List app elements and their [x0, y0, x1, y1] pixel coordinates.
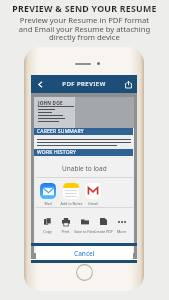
staticText: PDF PREVIEW: [46, 80, 122, 88]
staticText: More: [117, 229, 126, 234]
staticText: Preview your Resume in PDF format and Em…: [0, 15, 169, 42]
button[interactable]: Save to Files: [71, 216, 97, 236]
button[interactable]: More: [108, 216, 133, 236]
button[interactable]: Mail: [36, 183, 61, 205]
button[interactable]: Back: [34, 78, 46, 90]
button[interactable]: Share: [122, 78, 134, 90]
button[interactable]: Copy: [36, 216, 60, 236]
staticText: Print: [61, 229, 70, 234]
staticText: PREVIEW & SEND YOUR RESUME: [0, 3, 169, 15]
button[interactable]: Gmail: [80, 183, 106, 205]
staticText: Copy: [43, 229, 52, 234]
staticText: Create PDF: [94, 229, 113, 234]
staticText: JOHN DOE: [38, 100, 63, 106]
staticText: Cancel: [74, 249, 95, 258]
button[interactable]: Cancel: [36, 246, 133, 260]
button[interactable]: Add to Notes: [58, 183, 84, 205]
staticText: CAREER SUMMARY: [37, 128, 84, 135]
staticText: Save to Files: [74, 229, 95, 234]
button[interactable]: Create PDF: [90, 216, 116, 236]
staticText: Mail: [44, 201, 52, 206]
button[interactable]: Print: [52, 216, 78, 236]
staticText: Gmail: [88, 201, 98, 206]
staticText: WORK HISTORY: [37, 149, 77, 156]
staticText: Add to Notes: [60, 201, 83, 206]
staticText: Unable to load: [62, 164, 107, 173]
